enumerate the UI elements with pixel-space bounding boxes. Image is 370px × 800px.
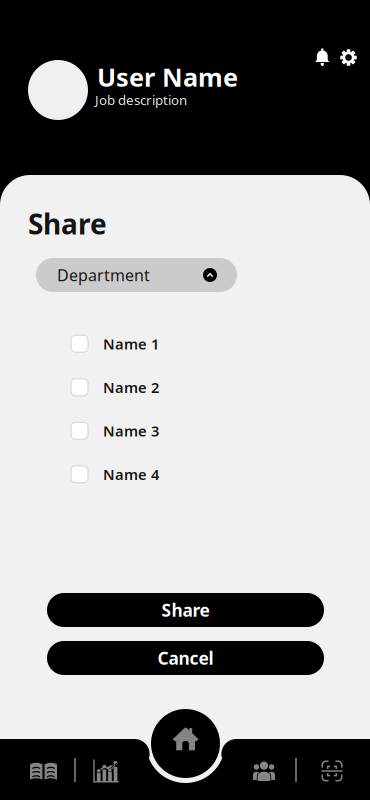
button[interactable]: Scan — [310, 749, 354, 793]
button[interactable]: Home — [151, 709, 220, 778]
button[interactable]: Name 3 — [0, 409, 370, 452]
button[interactable]: Library — [21, 749, 65, 793]
button[interactable]: People — [242, 749, 286, 793]
staticText: Job description — [95, 91, 187, 109]
staticText: Name 2 — [103, 377, 159, 397]
button[interactable]: Department — [36, 258, 237, 292]
staticText: Share — [161, 598, 209, 621]
staticText: User Name — [97, 60, 238, 94]
button[interactable]: Share — [47, 593, 324, 627]
staticText: Cancel — [157, 646, 213, 669]
staticText: Department — [57, 264, 150, 286]
button[interactable]: Settings — [334, 43, 363, 72]
button[interactable]: Name 1 — [0, 322, 370, 365]
button[interactable]: Notifications — [309, 42, 336, 72]
staticText: Share — [28, 205, 107, 242]
button[interactable]: Statistics — [84, 749, 128, 793]
button[interactable]: Name 2 — [0, 365, 370, 409]
button[interactable]: Name 4 — [0, 452, 370, 496]
button[interactable]: Cancel — [47, 641, 324, 675]
staticText: Name 4 — [103, 464, 159, 484]
staticText: Name 3 — [103, 421, 159, 440]
staticText: Name 1 — [103, 334, 159, 353]
